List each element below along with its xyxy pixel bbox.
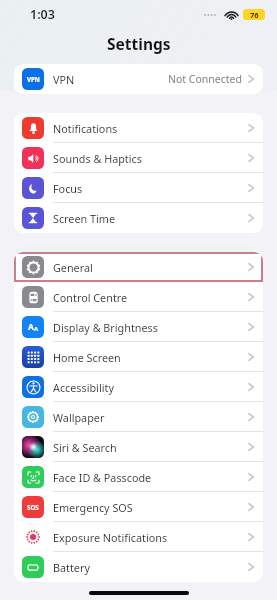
staticText: Notifications: [53, 121, 118, 136]
button[interactable]: Wallpaper: [14, 402, 263, 432]
button[interactable]: Screen Time: [14, 203, 263, 233]
staticText: Exposure Notifications: [53, 530, 168, 545]
staticText: General: [53, 260, 93, 275]
staticText: VPN: [27, 75, 40, 83]
staticText: Focus: [53, 181, 83, 196]
staticText: Siri & Search: [53, 440, 117, 455]
staticText: Not Connected: [168, 72, 242, 86]
button[interactable]: General: [14, 252, 263, 282]
staticText: Battery: [53, 560, 90, 575]
button[interactable]: Home Screen: [14, 342, 263, 372]
staticText: Display & Brightness: [53, 320, 158, 335]
button[interactable]: SOS: [14, 492, 263, 522]
staticText: 1:03: [30, 6, 55, 23]
staticText: A: [34, 325, 39, 333]
button[interactable]: A: [14, 312, 263, 342]
staticText: A: [28, 321, 34, 333]
staticText: Emergency SOS: [53, 500, 133, 515]
button[interactable]: Control Centre: [14, 282, 263, 312]
button[interactable]: Face ID & Passcode: [14, 462, 263, 492]
button[interactable]: VPN: [14, 64, 263, 94]
button[interactable]: Focus: [14, 173, 263, 203]
staticText: Settings: [107, 33, 171, 54]
button[interactable]: Exposure Notifications: [14, 522, 263, 552]
button[interactable]: Accessibility: [14, 372, 263, 402]
staticText: VPN: [53, 72, 75, 87]
staticText: Sounds & Haptics: [53, 151, 142, 166]
staticText: Home Screen: [53, 350, 121, 365]
staticText: Wallpaper: [53, 410, 105, 425]
staticText: Control Centre: [53, 290, 128, 305]
staticText: Face ID & Passcode: [53, 470, 152, 485]
staticText: SOS: [27, 503, 39, 511]
button[interactable]: Notifications: [14, 113, 263, 143]
staticText: Accessibility: [53, 380, 114, 395]
button[interactable]: Siri & Search: [14, 432, 263, 462]
button[interactable]: Sounds & Haptics: [14, 143, 263, 173]
staticText: Screen Time: [53, 211, 115, 226]
staticText: 76: [250, 10, 259, 20]
button[interactable]: Battery: [14, 552, 263, 582]
